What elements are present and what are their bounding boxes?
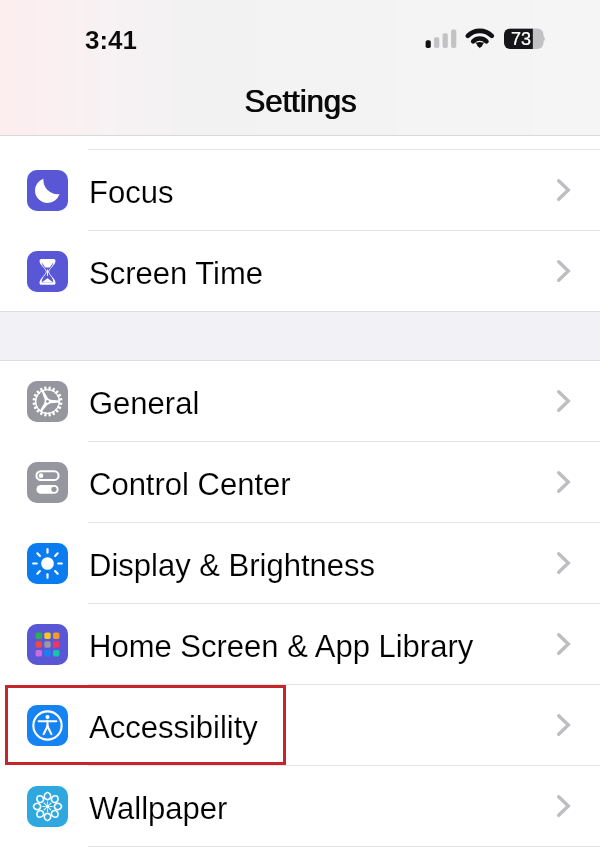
staticText: Accessibility: [89, 710, 258, 745]
button[interactable]: General: [0, 361, 600, 441]
button[interactable]: Control Center: [0, 442, 600, 522]
button[interactable]: Home Screen & App Library: [0, 604, 600, 684]
staticText: 73: [511, 29, 532, 49]
staticText: Settings: [0, 84, 600, 119]
staticText: Home Screen & App Library: [89, 629, 474, 664]
staticText: 3:41: [85, 25, 138, 54]
button[interactable]: Accessibility: [0, 685, 600, 765]
staticText: Display & Brightness: [89, 548, 376, 583]
button[interactable]: Display & Brightness: [0, 523, 600, 603]
staticText: Settings: [1, 84, 600, 119]
staticText: General: [89, 386, 200, 421]
button[interactable]: Focus: [0, 150, 600, 230]
staticText: Wallpaper: [89, 791, 228, 826]
button[interactable]: Screen Time: [0, 231, 600, 311]
staticText: Control Center: [89, 467, 291, 502]
staticText: Focus: [89, 175, 174, 210]
staticText: Settings: [1, 84, 600, 119]
staticText: Screen Time: [89, 256, 264, 291]
button[interactable]: Wallpaper: [0, 766, 600, 846]
